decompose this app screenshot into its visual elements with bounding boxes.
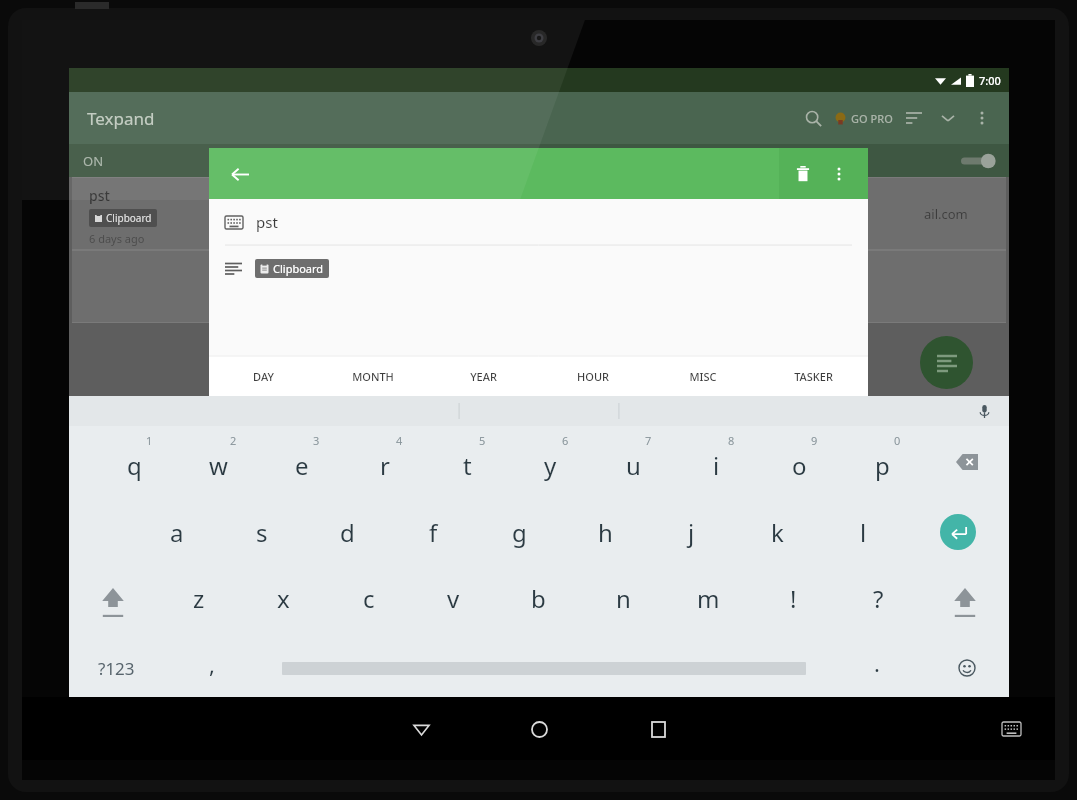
staticText: m (697, 582, 720, 615)
button[interactable]: Emoji (924, 639, 1009, 697)
button[interactable]: DAY (209, 356, 318, 396)
staticText: 4 (396, 433, 403, 448)
button[interactable]: a (134, 498, 219, 566)
staticText: GO PRO (851, 111, 893, 126)
button[interactable]: d (304, 498, 390, 566)
button[interactable]: ? (836, 566, 921, 639)
staticText: j (688, 516, 695, 549)
staticText: y (544, 449, 557, 482)
button[interactable] (72, 250, 1006, 323)
staticText: c (363, 582, 375, 615)
button[interactable]: 4 (343, 426, 426, 498)
staticText: pst (89, 186, 110, 205)
staticText: b (531, 582, 546, 615)
staticText: 6 days ago (89, 231, 145, 246)
button[interactable]: x (241, 566, 326, 639)
button[interactable]: 1 (92, 426, 176, 498)
button[interactable]: Delete (784, 155, 822, 193)
button[interactable]: ?123 (69, 639, 164, 697)
staticText: ON (83, 152, 104, 170)
button[interactable]: 0 (841, 426, 924, 498)
button[interactable]: Space (259, 639, 829, 697)
button[interactable]: Shift (69, 566, 157, 639)
button[interactable]: l (820, 498, 906, 566)
button[interactable]: Recent apps (634, 705, 682, 753)
button[interactable]: ! (751, 566, 836, 639)
button[interactable]: 7 (592, 426, 675, 498)
button[interactable]: 9 (758, 426, 841, 498)
staticText: t (463, 449, 472, 482)
staticText: ! (790, 582, 797, 615)
button[interactable]: 5 (426, 426, 509, 498)
staticText: p (875, 449, 890, 482)
button[interactable]: More options (822, 157, 856, 191)
staticText: 7:00 (979, 73, 1001, 88)
staticText: r (380, 449, 390, 482)
staticText: , (209, 649, 215, 679)
button[interactable]: j (648, 498, 734, 566)
staticText: q (127, 449, 142, 482)
button[interactable]: z (157, 566, 241, 639)
button[interactable]: 8 (675, 426, 758, 498)
button[interactable]: Expand (931, 101, 965, 135)
staticText: ? (873, 582, 884, 615)
button[interactable]: pst (209, 199, 868, 245)
staticText: YEAR (470, 369, 497, 384)
button[interactable]: f (390, 498, 476, 566)
button[interactable]: YEAR (428, 356, 538, 396)
staticText: g (512, 516, 527, 549)
button[interactable]: MONTH (318, 356, 428, 396)
button[interactable]: Switch keyboard (994, 712, 1028, 746)
button[interactable]: New phrase (920, 336, 973, 389)
button[interactable]: 3 (260, 426, 343, 498)
button[interactable]: , (164, 639, 259, 697)
button[interactable]: h (562, 498, 648, 566)
staticText: 2 (230, 433, 237, 448)
button[interactable]: Backspace (924, 426, 1009, 498)
button[interactable]: v (411, 566, 496, 639)
staticText: MONTH (352, 369, 394, 384)
button[interactable]: c (326, 566, 411, 639)
staticText: 7 (645, 433, 652, 448)
staticText: l (860, 516, 867, 549)
button[interactable]: MISC (648, 356, 758, 396)
button[interactable]: . (829, 639, 924, 697)
staticText: 9 (811, 433, 818, 448)
button[interactable]: m (666, 566, 751, 639)
staticText: 1 (146, 433, 153, 448)
staticText: 8 (728, 433, 735, 448)
staticText: x (277, 582, 290, 615)
button[interactable]: Back (397, 705, 445, 753)
button[interactable]: HOUR (538, 356, 648, 396)
button[interactable]: Back (221, 155, 259, 193)
button[interactable]: 2 (176, 426, 260, 498)
staticText: HOUR (577, 369, 609, 384)
button[interactable]: b (496, 566, 581, 639)
button[interactable]: Voice input (973, 400, 995, 422)
staticText: s (256, 516, 268, 549)
staticText: w (209, 449, 228, 482)
button[interactable]: TASKER (758, 356, 868, 396)
staticText: . (874, 648, 880, 678)
button[interactable]: Enter (906, 498, 1009, 566)
button[interactable]: Home (515, 705, 563, 753)
button[interactable]: GO PRO (830, 111, 897, 126)
button[interactable]: 6 (509, 426, 592, 498)
button[interactable]: Shift (921, 566, 1009, 639)
button[interactable]: pst (72, 177, 1006, 250)
button[interactable]: Clipboard (209, 246, 868, 290)
button[interactable]: n (581, 566, 666, 639)
button[interactable]: k (734, 498, 820, 566)
button[interactable]: Search (796, 101, 830, 135)
staticText: 6 (562, 433, 569, 448)
button[interactable]: s (219, 498, 304, 566)
button[interactable]: More options (965, 101, 999, 135)
staticText: e (295, 449, 309, 482)
staticText: a (170, 516, 184, 549)
staticText: v (447, 582, 460, 615)
button[interactable]: g (476, 498, 562, 566)
staticText: z (193, 582, 205, 615)
button[interactable]: Sort (897, 101, 931, 135)
staticText: i (713, 449, 720, 482)
staticText: Texpand (87, 107, 155, 130)
